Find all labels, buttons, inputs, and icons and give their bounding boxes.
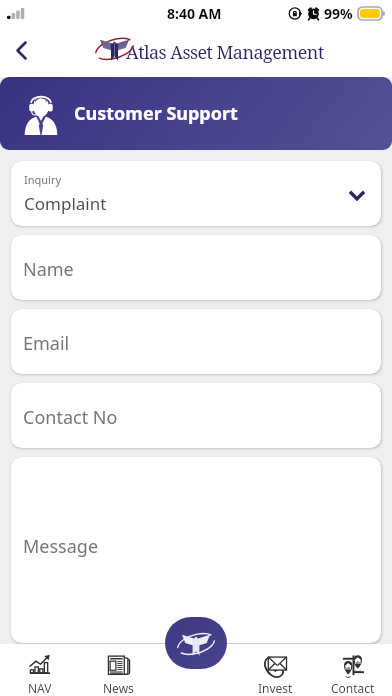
- button[interactable]: Invest: [236, 644, 314, 696]
- button[interactable]: Message: [11, 457, 381, 643]
- button[interactable]: Inquiry: [11, 161, 381, 226]
- button[interactable]: Back: [0, 30, 44, 74]
- staticText: NAV: [28, 680, 52, 696]
- staticText: Name: [23, 257, 74, 282]
- button[interactable]: Home: [165, 617, 227, 669]
- button[interactable]: Customer Support: [0, 77, 392, 150]
- staticText: News: [103, 680, 134, 696]
- button[interactable]: NAV: [0, 644, 79, 696]
- staticText: 8:40 AM: [167, 4, 222, 23]
- staticText: Contact: [331, 680, 375, 696]
- staticText: Inquiry: [24, 172, 62, 187]
- staticText: Invest: [258, 680, 293, 696]
- staticText: Message: [23, 534, 99, 559]
- staticText: Atlas Asset Management: [126, 40, 324, 65]
- staticText: Customer Support: [74, 101, 238, 126]
- staticText: Email: [23, 331, 70, 356]
- button[interactable]: News: [79, 644, 158, 696]
- button[interactable]: Name: [11, 235, 381, 300]
- staticText: 99%: [324, 4, 353, 23]
- staticText: Contact No: [23, 405, 118, 430]
- staticText: Complaint: [24, 192, 107, 215]
- button[interactable]: Email: [11, 309, 381, 374]
- button[interactable]: Contact: [314, 644, 392, 696]
- button[interactable]: Contact No: [11, 383, 381, 448]
